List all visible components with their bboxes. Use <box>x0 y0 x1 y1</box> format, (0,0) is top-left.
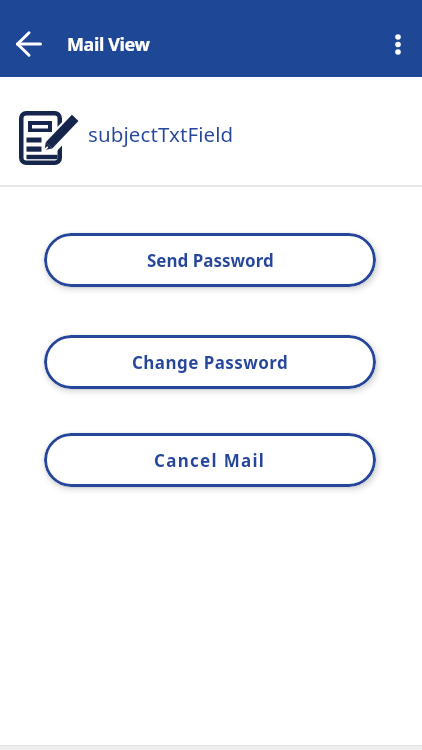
button[interactable]: Send Password <box>44 233 376 287</box>
staticText: Change Password <box>132 351 289 374</box>
staticText: Send Password <box>147 249 274 272</box>
button[interactable] <box>10 26 48 62</box>
staticText: Mail View <box>67 32 150 57</box>
button[interactable] <box>380 26 416 62</box>
staticText: Cancel Mail <box>154 449 266 472</box>
button[interactable]: Change Password <box>44 335 376 389</box>
button[interactable]: Cancel Mail <box>44 433 376 487</box>
staticText: subjectTxtField <box>88 120 234 148</box>
